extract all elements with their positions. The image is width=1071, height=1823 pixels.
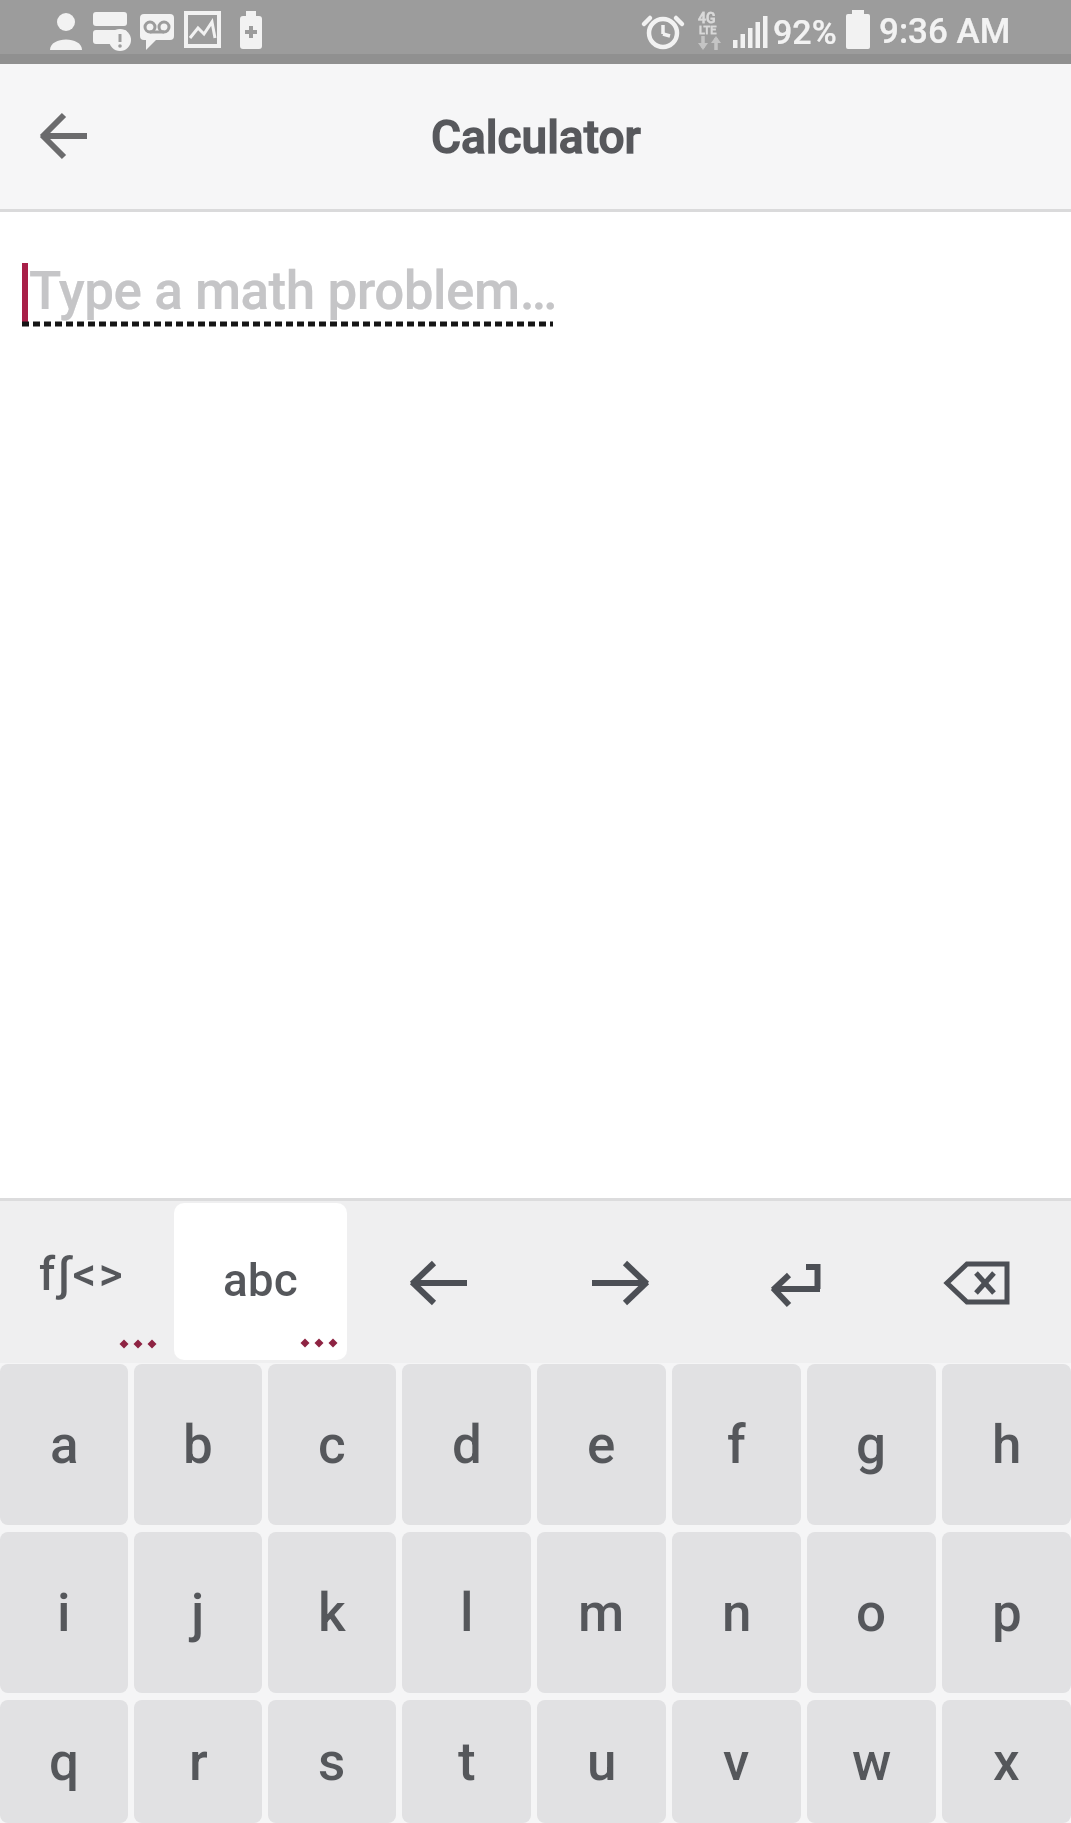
button[interactable]: t bbox=[402, 1700, 531, 1823]
button[interactable]: k bbox=[268, 1532, 396, 1693]
staticText: f bbox=[727, 1414, 746, 1476]
button[interactable]: Type a math problem… bbox=[0, 212, 1071, 1198]
staticText: v bbox=[723, 1731, 750, 1793]
button[interactable]: p bbox=[942, 1532, 1071, 1693]
staticText: j bbox=[191, 1582, 205, 1644]
button[interactable]: o bbox=[807, 1532, 936, 1693]
staticText: 92% bbox=[773, 12, 837, 52]
staticText: u bbox=[587, 1731, 617, 1793]
staticText: 4G bbox=[698, 10, 716, 26]
staticText: Type a math problem… bbox=[29, 260, 557, 322]
staticText: i bbox=[57, 1582, 71, 1644]
staticText: Calculator bbox=[431, 110, 641, 164]
button[interactable]: d bbox=[402, 1364, 531, 1525]
staticText: h bbox=[992, 1414, 1022, 1476]
button[interactable]: f∫<> bbox=[10, 1221, 155, 1356]
staticText: m bbox=[578, 1582, 625, 1644]
button[interactable]: j bbox=[134, 1532, 262, 1693]
staticText: d bbox=[452, 1414, 482, 1476]
staticText: t bbox=[458, 1731, 476, 1793]
button[interactable]: m bbox=[537, 1532, 666, 1693]
button[interactable] bbox=[753, 1223, 843, 1343]
button[interactable] bbox=[395, 1223, 485, 1343]
button[interactable]: e bbox=[537, 1364, 666, 1525]
button[interactable]: q bbox=[0, 1700, 128, 1823]
staticText: e bbox=[587, 1414, 616, 1476]
staticText: abc bbox=[223, 1253, 298, 1307]
button[interactable]: a bbox=[0, 1364, 128, 1525]
staticText: o bbox=[856, 1582, 887, 1644]
staticText: a bbox=[50, 1414, 79, 1476]
staticText: s bbox=[318, 1731, 346, 1793]
button[interactable]: f bbox=[672, 1364, 801, 1525]
staticText: p bbox=[992, 1582, 1022, 1644]
staticText: b bbox=[183, 1414, 213, 1476]
staticText: l bbox=[460, 1582, 474, 1644]
button[interactable]: b bbox=[134, 1364, 262, 1525]
button[interactable]: v bbox=[672, 1700, 801, 1823]
button[interactable] bbox=[30, 101, 100, 171]
button[interactable]: h bbox=[942, 1364, 1071, 1525]
button[interactable]: x bbox=[942, 1700, 1071, 1823]
staticText: c bbox=[318, 1414, 346, 1476]
staticText: x bbox=[993, 1731, 1020, 1793]
staticText: 9:36 AM bbox=[879, 11, 1011, 52]
button[interactable]: u bbox=[537, 1700, 666, 1823]
button[interactable]: r bbox=[134, 1700, 262, 1823]
staticText: f∫<> bbox=[39, 1247, 126, 1301]
button[interactable]: w bbox=[807, 1700, 936, 1823]
staticText: n bbox=[722, 1582, 752, 1644]
button[interactable]: i bbox=[0, 1532, 128, 1693]
button[interactable]: l bbox=[402, 1532, 531, 1693]
button[interactable] bbox=[574, 1223, 664, 1343]
button[interactable]: c bbox=[268, 1364, 396, 1525]
button[interactable]: g bbox=[807, 1364, 936, 1525]
button[interactable] bbox=[932, 1223, 1022, 1343]
button[interactable]: abc bbox=[174, 1203, 347, 1360]
button[interactable]: n bbox=[672, 1532, 801, 1693]
staticText: LTE bbox=[699, 24, 717, 37]
button[interactable]: s bbox=[268, 1700, 396, 1823]
staticText: g bbox=[856, 1414, 887, 1476]
staticText: w bbox=[852, 1731, 892, 1793]
staticText: k bbox=[318, 1582, 346, 1644]
staticText: r bbox=[189, 1731, 208, 1793]
staticText: q bbox=[49, 1731, 79, 1793]
